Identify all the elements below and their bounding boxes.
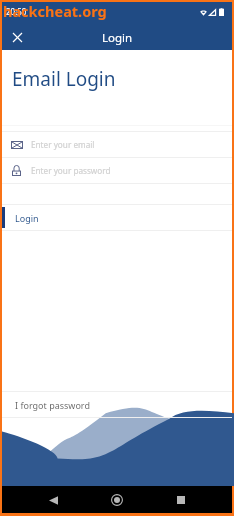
button[interactable]: Close [5,25,29,49]
button[interactable]: Login [2,205,232,230]
staticText: hackcheat.org [3,1,107,21]
button[interactable]: I forgot password [2,392,232,417]
staticText: Enter your email [31,139,95,150]
staticText: Login [102,30,133,46]
button[interactable]: Back [40,487,66,513]
button[interactable]: Recent apps [168,487,194,513]
button[interactable]: Enter your email [2,132,232,157]
staticText: Enter your password [31,165,111,176]
button[interactable]: Enter your password [2,158,232,183]
staticText: I forgot password [15,399,90,411]
staticText: 20:50 [6,6,27,17]
staticText: Email Login [12,66,116,92]
button[interactable]: Home [104,487,130,513]
staticText: Login [15,212,39,224]
